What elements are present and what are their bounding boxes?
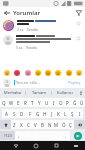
button[interactable]: Yorum ekle... — [14, 80, 67, 85]
button[interactable]: Ana ekran — [31, 141, 41, 150]
button[interactable]: Gönder — [72, 7, 85, 18]
button[interactable]: Paylaş — [67, 80, 82, 85]
button[interactable]: Geri — [11, 141, 21, 150]
staticText: D — [20, 111, 24, 117]
staticText: I — [79, 111, 81, 117]
staticText: , — [18, 133, 20, 139]
button[interactable]: Emoji 6 — [54, 69, 61, 76]
button[interactable]: Z — [11, 120, 18, 129]
staticText: Tamam — [32, 90, 46, 95]
button[interactable]: D — [18, 109, 26, 118]
button[interactable]: U — [43, 98, 50, 107]
button[interactable]: Emoji 8 — [75, 69, 82, 76]
staticText: Z — [13, 122, 16, 128]
staticText: Kullanıcı — [57, 90, 73, 95]
staticText: N — [48, 122, 52, 128]
staticText: Ç — [69, 122, 72, 128]
staticText: Q — [2, 100, 6, 106]
button[interactable]: Emoji 2 — [13, 69, 20, 76]
button[interactable]: Tamam — [26, 88, 51, 97]
button[interactable]: K — [55, 109, 62, 118]
button[interactable]: T — [29, 98, 36, 107]
button[interactable]: I — [50, 98, 57, 107]
staticText: Yanıtla — [26, 45, 37, 50]
button[interactable]: S — [10, 109, 18, 118]
button[interactable]: E — [15, 98, 22, 107]
button[interactable]: Ö — [60, 120, 67, 129]
staticText: K — [57, 111, 60, 117]
button[interactable]: Son uygulamalar — [51, 141, 61, 150]
button[interactable]: Beğen — [75, 20, 82, 27]
button[interactable]: Emoji 3 — [24, 69, 31, 76]
button[interactable]: W — [8, 98, 15, 107]
staticText: H — [43, 111, 47, 117]
button[interactable]: M — [53, 120, 60, 129]
button[interactable]: Ş — [69, 109, 76, 118]
button[interactable]: Emoji 1 — [3, 69, 10, 76]
staticText: A — [5, 111, 8, 117]
staticText: F — [29, 111, 32, 117]
button[interactable]: B — [39, 120, 46, 129]
button[interactable]: , — [15, 131, 23, 140]
button[interactable]: Klavye — [71, 141, 81, 150]
staticText: G — [36, 111, 40, 117]
button[interactable]: Emoji 7 — [65, 69, 72, 76]
button[interactable]: . — [62, 131, 70, 140]
button[interactable]: Sil — [74, 120, 85, 129]
button[interactable]: X — [18, 120, 25, 129]
staticText: Ş — [71, 111, 74, 117]
button[interactable]: O — [57, 98, 64, 107]
button[interactable]: Ğ — [71, 98, 78, 107]
button[interactable]: Büyük harf — [0, 120, 11, 129]
button[interactable]: Ç — [67, 120, 74, 129]
button[interactable]: Q — [0, 98, 8, 107]
staticText: P — [66, 100, 69, 106]
button[interactable]: H — [41, 109, 48, 118]
button[interactable]: A — [2, 109, 10, 118]
staticText: W — [9, 100, 14, 106]
staticText: J — [51, 111, 53, 117]
staticText: ?123 — [4, 133, 12, 138]
staticText: S — [13, 111, 16, 117]
button[interactable]: Kullanıcı — [52, 88, 77, 97]
button[interactable]: Mikrofon — [77, 88, 85, 97]
button[interactable]: Beğen — [75, 35, 82, 42]
staticText: Ü — [80, 100, 84, 106]
staticText: 2 sa — [17, 27, 24, 32]
staticText: 5 sa — [16, 45, 23, 50]
staticText: Y — [38, 100, 41, 106]
button[interactable]: I — [76, 109, 83, 118]
staticText: I — [53, 100, 55, 106]
button[interactable]: Emoji 5 — [44, 69, 51, 76]
staticText: C — [27, 122, 30, 128]
button[interactable]: ?123 — [0, 131, 15, 140]
staticText: E — [17, 100, 20, 106]
button[interactable]: 2 sa — [0, 18, 85, 32]
staticText: M — [54, 122, 59, 128]
button[interactable]: N — [46, 120, 53, 129]
staticText: Paylaş — [68, 80, 81, 85]
button[interactable]: P — [64, 98, 71, 107]
button[interactable]: Gönder — [74, 132, 82, 140]
button[interactable]: R — [22, 98, 29, 107]
button[interactable]: G — [34, 109, 41, 118]
button[interactable]: V — [32, 120, 39, 129]
button[interactable]: 5 sa — [0, 32, 85, 50]
staticText: X — [20, 122, 23, 128]
button[interactable]: L — [62, 109, 69, 118]
staticText: O — [59, 100, 63, 106]
button[interactable]: Ü — [78, 98, 85, 107]
button[interactable]: Merhaba — [0, 88, 25, 97]
staticText: U — [45, 100, 49, 106]
button[interactable]: J — [48, 109, 55, 118]
button[interactable]: C — [25, 120, 32, 129]
button[interactable]: Emoji 4 — [34, 69, 41, 76]
staticText: Merhaba — [4, 90, 21, 95]
button[interactable]: Geri — [0, 7, 13, 18]
button[interactable]: F — [26, 109, 34, 118]
staticText: Yanıtla — [27, 27, 38, 32]
staticText: B — [41, 122, 44, 128]
button[interactable]: Y — [36, 98, 43, 107]
staticText: V — [34, 122, 37, 128]
